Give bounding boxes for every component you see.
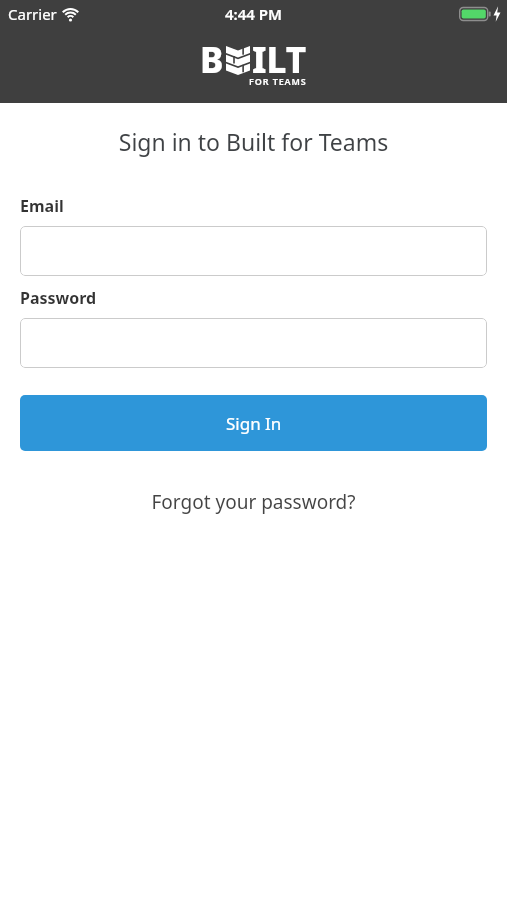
staticText: 4:44 PM [225,4,282,24]
staticText: Carrier [8,4,57,24]
button[interactable] [20,226,487,276]
button[interactable] [20,318,487,368]
button[interactable]: Sign In [20,395,487,451]
staticText: Sign in to Built for Teams [0,126,507,157]
staticText: Sign In [226,412,282,435]
staticText: ILT [252,36,307,84]
staticText: B [200,36,224,84]
staticText: Password [20,287,97,309]
button[interactable]: Forgot your password? [0,489,507,515]
staticText: FOR TEAMS [249,75,307,87]
staticText: Email [20,195,64,217]
